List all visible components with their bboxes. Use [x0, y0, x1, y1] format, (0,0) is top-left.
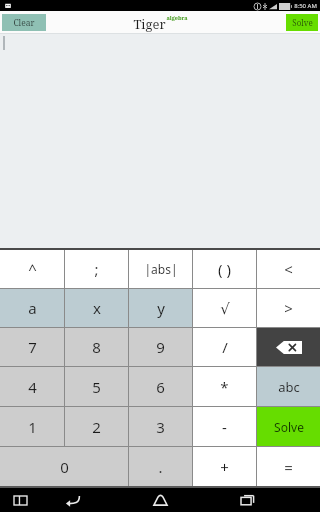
button[interactable]: 0	[0, 447, 128, 486]
button[interactable]: ;	[65, 250, 128, 288]
staticText: ^	[28, 259, 37, 279]
staticText: x	[93, 298, 101, 318]
staticText: ;	[94, 259, 99, 279]
button[interactable]: ^	[0, 250, 64, 288]
button[interactable]: -	[193, 407, 256, 446]
button[interactable]: *	[193, 367, 256, 406]
button[interactable]: Clear	[2, 14, 46, 31]
button[interactable]: Solve	[286, 14, 318, 31]
staticText: a	[28, 298, 37, 318]
button[interactable]: 7	[0, 328, 64, 366]
staticText: algebra	[166, 14, 188, 21]
staticText: y	[157, 298, 165, 318]
staticText: Solve	[274, 419, 304, 435]
button[interactable]: 5	[65, 367, 128, 406]
staticText: +	[220, 457, 229, 477]
button[interactable]: y	[129, 289, 192, 327]
staticText: 5	[92, 377, 101, 397]
button[interactable]: 1	[0, 407, 64, 446]
button[interactable]: +	[193, 447, 256, 486]
staticText: 6	[156, 377, 165, 397]
staticText: Solve	[292, 17, 313, 28]
staticText: ( )	[218, 259, 231, 279]
button[interactable]: >	[257, 289, 320, 327]
staticText: abc	[278, 378, 300, 396]
staticText: *	[220, 377, 229, 397]
staticText: 9	[156, 337, 165, 357]
button[interactable]: Recent apps	[237, 489, 259, 511]
button[interactable]: .	[129, 447, 192, 486]
button[interactable]: √	[193, 289, 256, 327]
button[interactable]: <	[257, 250, 320, 288]
staticText: Tiger	[133, 15, 166, 33]
staticText: 8	[92, 337, 101, 357]
button[interactable]: 9	[129, 328, 192, 366]
staticText: 1	[28, 417, 37, 437]
button[interactable]: =	[257, 447, 320, 486]
staticText: =	[284, 457, 293, 477]
button[interactable]: abc	[257, 367, 320, 406]
staticText: >	[284, 298, 293, 318]
button[interactable]: Split screen	[10, 490, 30, 510]
staticText: <	[284, 259, 293, 279]
button[interactable]: a	[0, 289, 64, 327]
button[interactable]: 8	[65, 328, 128, 366]
staticText: -	[222, 417, 227, 437]
staticText: Clear	[13, 17, 35, 29]
button[interactable]: 4	[0, 367, 64, 406]
staticText: 4	[28, 377, 37, 397]
button[interactable]: ( )	[193, 250, 256, 288]
button[interactable]: Home	[149, 489, 171, 511]
button[interactable]: x	[65, 289, 128, 327]
button[interactable]: 6	[129, 367, 192, 406]
staticText: /	[222, 337, 228, 357]
button[interactable]: Delete	[257, 328, 320, 366]
staticText: 8:50 AM	[294, 2, 317, 10]
staticText: 2	[92, 417, 101, 437]
staticText: 0	[60, 457, 69, 477]
button[interactable]: Back	[61, 489, 83, 511]
button[interactable]: Solve	[257, 407, 320, 446]
staticText: √	[220, 300, 230, 317]
staticText: |abs|	[144, 261, 178, 277]
button[interactable]: 2	[65, 407, 128, 446]
staticText: 3	[156, 417, 165, 437]
staticText: 7	[28, 337, 37, 357]
button[interactable]: /	[193, 328, 256, 366]
button[interactable]: 3	[129, 407, 192, 446]
button[interactable]: |abs|	[129, 250, 192, 288]
staticText: .	[158, 457, 163, 477]
